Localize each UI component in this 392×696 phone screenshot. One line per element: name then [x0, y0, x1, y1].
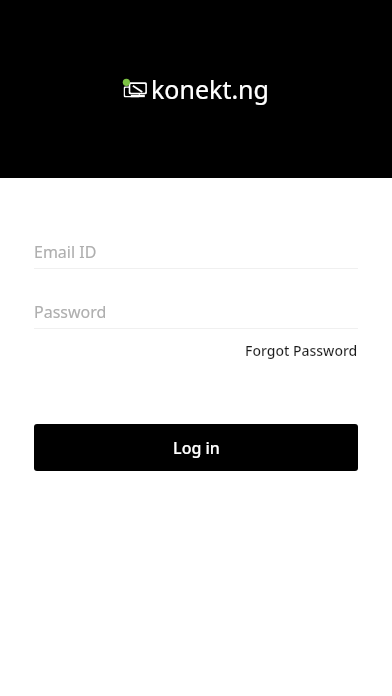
- button[interactable]: Password: [34, 296, 358, 328]
- button[interactable]: Email ID: [34, 236, 358, 268]
- staticText: Forgot Password: [245, 341, 358, 360]
- staticText: Password: [34, 301, 107, 323]
- button[interactable]: Forgot Password: [245, 337, 358, 364]
- other: konekt.ng logo: [123, 77, 149, 101]
- staticText: konekt.ng: [151, 72, 269, 106]
- staticText: Log in: [173, 437, 220, 459]
- button[interactable]: Log in: [34, 424, 358, 471]
- staticText: Email ID: [34, 241, 97, 263]
